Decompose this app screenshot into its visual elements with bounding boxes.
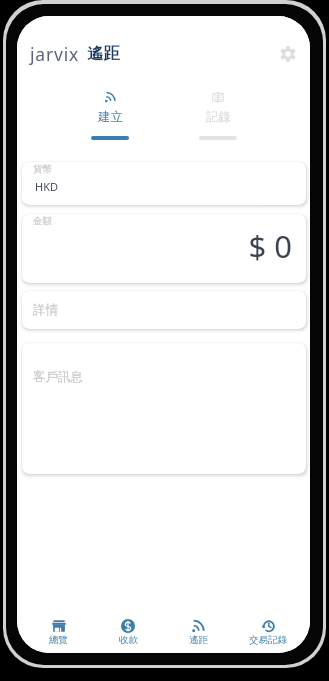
- staticText: 貨幣: [33, 163, 52, 175]
- button[interactable]: 交易記錄: [233, 609, 303, 646]
- button[interactable]: Settings: [273, 39, 303, 69]
- staticText: 記錄: [206, 109, 231, 125]
- staticText: 遙距: [87, 44, 120, 64]
- staticText: 建立: [98, 109, 123, 125]
- staticText: 交易記錄: [249, 634, 287, 646]
- staticText: jarvix: [30, 42, 80, 66]
- button[interactable]: 記錄: [164, 91, 272, 140]
- button[interactable]: 收款: [93, 609, 163, 646]
- button[interactable]: 建立: [56, 91, 164, 140]
- staticText: 金額: [33, 215, 52, 227]
- staticText: 收款: [119, 634, 138, 646]
- button[interactable]: 總覽: [24, 609, 93, 646]
- staticText: 客戶訊息: [33, 369, 83, 385]
- staticText: $ 0: [248, 225, 292, 267]
- staticText: HKD: [35, 179, 58, 194]
- staticText: 總覽: [49, 634, 68, 646]
- staticText: 遙距: [189, 634, 208, 646]
- button[interactable]: 遙距: [163, 609, 233, 646]
- staticText: 詳情: [33, 302, 58, 318]
